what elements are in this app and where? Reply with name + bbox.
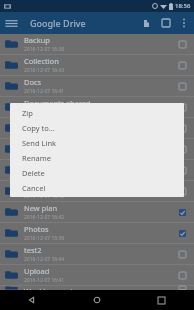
staticText: Zip bbox=[22, 108, 33, 118]
button[interactable]: Open navigation drawer bbox=[0, 12, 22, 34]
staticText: Drive bbox=[24, 119, 43, 129]
button[interactable]: Music bbox=[0, 181, 194, 202]
button[interactable]: Zip bbox=[10, 105, 184, 120]
staticText: Weekly report bbox=[24, 286, 74, 290]
staticText: 2016-12-07 15:39 bbox=[24, 235, 65, 242]
button[interactable]: Select Home bbox=[175, 142, 189, 156]
staticText: 2016-12-07 16:42 bbox=[24, 193, 65, 200]
staticText: 2016-12-07 16:44 bbox=[24, 172, 65, 179]
staticText: Send Link bbox=[22, 138, 57, 148]
button[interactable]: Select Docs bbox=[175, 79, 189, 93]
staticText: Copy to... bbox=[22, 123, 55, 133]
staticText: New plan bbox=[24, 203, 58, 213]
button[interactable]: Weekly report bbox=[0, 286, 194, 290]
staticText: 2016-12-07 16:44 bbox=[24, 256, 65, 263]
button[interactable]: Select New plan bbox=[175, 205, 189, 219]
button[interactable]: More options bbox=[176, 15, 192, 31]
staticText: 2016-12-07 16:38 bbox=[24, 46, 65, 53]
staticText: Upload bbox=[24, 266, 50, 276]
button[interactable]: Photos bbox=[0, 223, 194, 244]
staticText: 18:56 bbox=[175, 2, 191, 10]
button[interactable]: Copy to... bbox=[10, 120, 184, 135]
button[interactable]: Select Photos bbox=[175, 226, 189, 240]
button[interactable]: Recents bbox=[129, 290, 194, 310]
button[interactable]: Upload bbox=[0, 265, 194, 286]
button[interactable]: Sort bbox=[136, 13, 156, 33]
button[interactable]: Select Documents shared bbox=[175, 100, 189, 114]
staticText: Collection bbox=[24, 56, 59, 66]
button[interactable]: Docs bbox=[0, 76, 194, 97]
button[interactable]: Back bbox=[0, 290, 64, 310]
button[interactable]: Media bbox=[0, 160, 194, 181]
button[interactable]: Backup bbox=[0, 34, 194, 55]
button[interactable]: Select all bbox=[156, 13, 176, 33]
staticText: 2016-12-07 16:38 bbox=[24, 109, 65, 116]
button[interactable]: Rename bbox=[10, 150, 184, 165]
button[interactable]: Select Media bbox=[175, 163, 189, 177]
button[interactable]: Delete bbox=[10, 165, 184, 180]
staticText: 2016-12-07 16:41 bbox=[24, 88, 65, 95]
staticText: Rename bbox=[22, 153, 51, 163]
button[interactable]: test2 bbox=[0, 244, 194, 265]
staticText: 2016-12-07 16:40 bbox=[24, 130, 65, 137]
staticText: 2016-12-07 16:42 bbox=[24, 214, 65, 221]
button[interactable]: Select Upload bbox=[175, 268, 189, 282]
staticText: Photos bbox=[24, 224, 49, 234]
staticText: Backup bbox=[24, 35, 50, 45]
button[interactable]: Select Music bbox=[175, 184, 189, 198]
staticText: Delete bbox=[22, 168, 45, 178]
button[interactable]: Home bbox=[64, 290, 129, 310]
staticText: Music bbox=[24, 182, 45, 192]
staticText: Google Drive bbox=[30, 17, 86, 29]
staticText: test2 bbox=[24, 245, 42, 255]
button[interactable]: Drive bbox=[0, 118, 194, 139]
button[interactable]: Cancel bbox=[10, 180, 184, 195]
button[interactable]: Select Drive bbox=[175, 121, 189, 135]
staticText: 2016-12-07 16:41 bbox=[24, 277, 65, 284]
staticText: 2016-12-07 16:39 bbox=[24, 151, 65, 158]
staticText: Cancel bbox=[22, 183, 46, 193]
button[interactable]: Documents shared bbox=[0, 97, 194, 118]
button[interactable]: Select Collection bbox=[175, 58, 189, 72]
button[interactable]: Select Backup bbox=[175, 37, 189, 51]
staticText: Docs bbox=[24, 77, 42, 87]
button[interactable]: Select test2 bbox=[175, 247, 189, 261]
staticText: Documents shared bbox=[24, 98, 91, 108]
button[interactable]: New plan bbox=[0, 202, 194, 223]
staticText: 2016-12-07 16:43 bbox=[24, 67, 65, 74]
button[interactable]: Send Link bbox=[10, 135, 184, 150]
button[interactable]: Collection bbox=[0, 55, 194, 76]
button[interactable]: Select Weekly report bbox=[175, 286, 189, 290]
staticText: Home bbox=[24, 140, 46, 150]
button[interactable]: Home bbox=[0, 139, 194, 160]
